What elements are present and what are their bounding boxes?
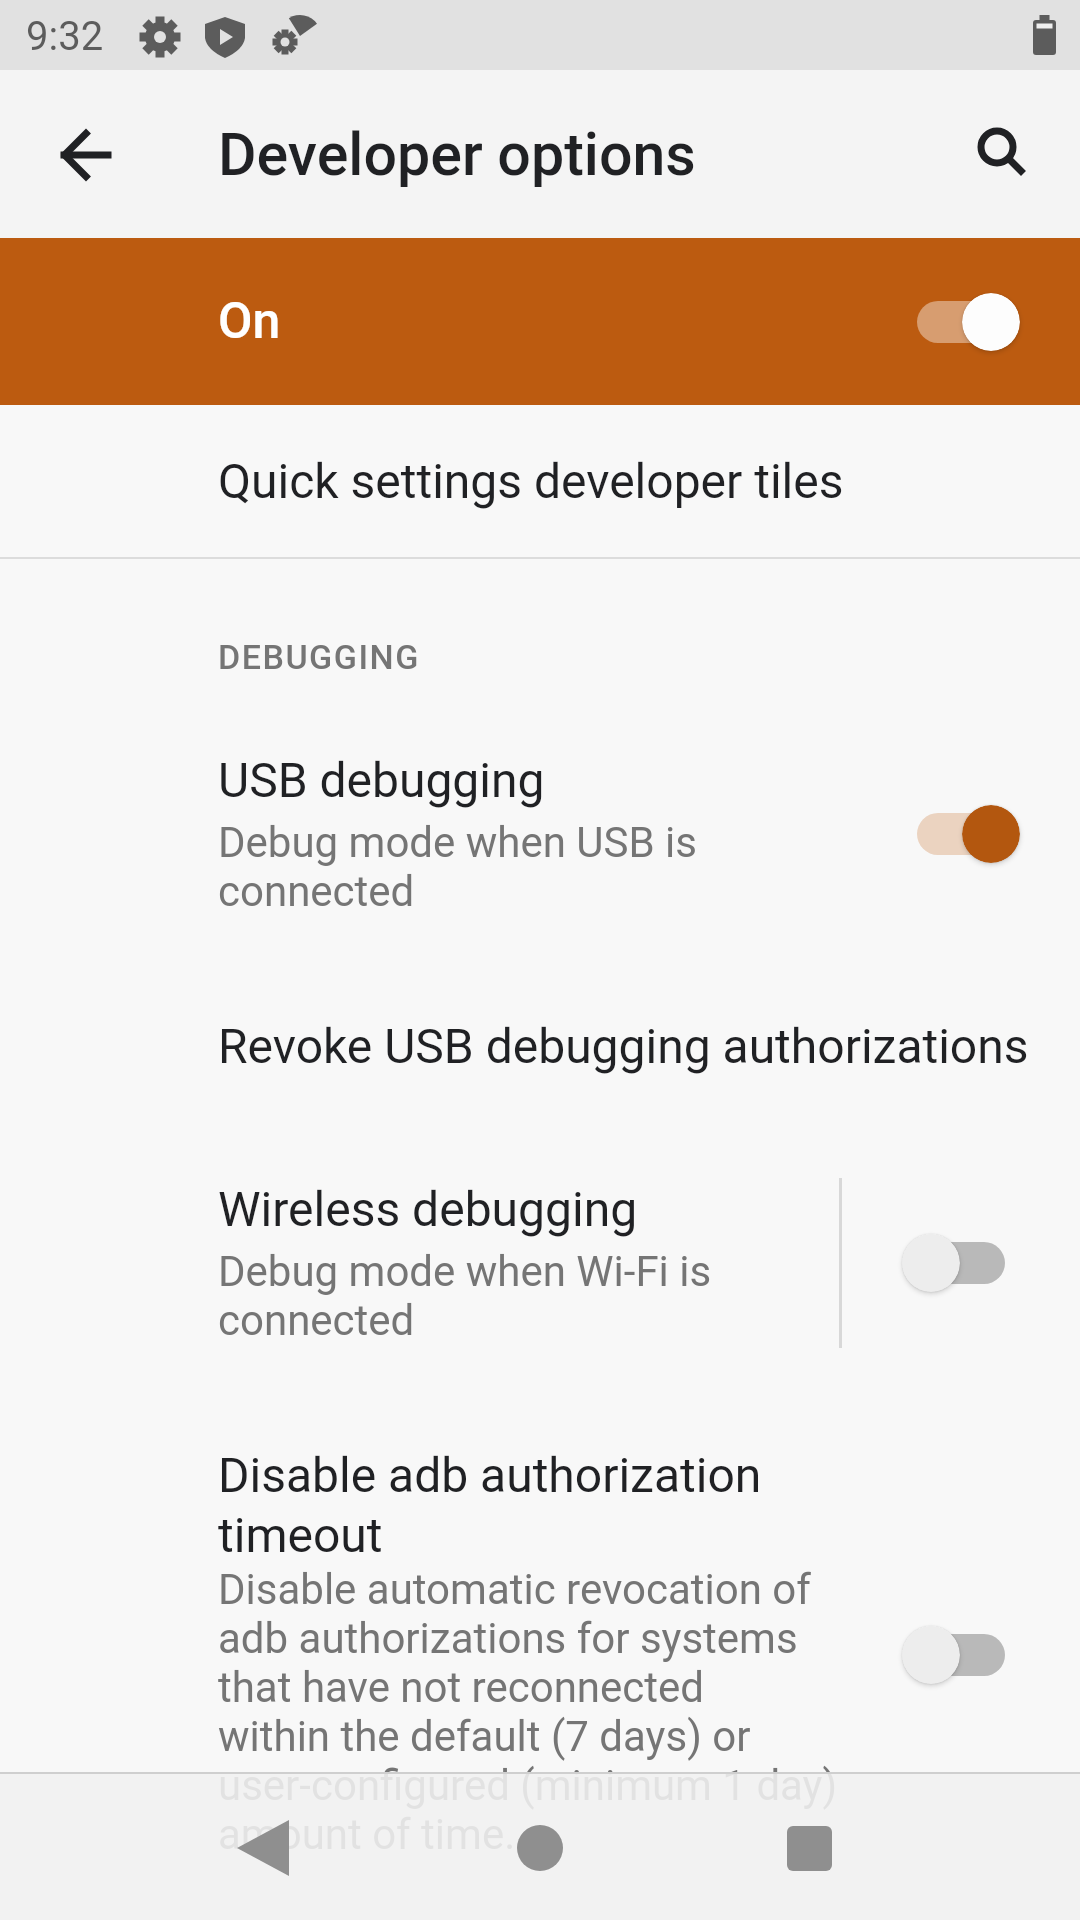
button[interactable]: [38, 108, 134, 204]
button[interactable]: USB debugging: [0, 705, 1080, 962]
button[interactable]: Disable adb authorization timeout: [0, 1395, 1080, 1920]
button[interactable]: [952, 104, 1048, 200]
staticText: Debug mode when USB is connected: [218, 818, 697, 916]
button[interactable]: [902, 1231, 1020, 1295]
button[interactable]: [215, 1800, 311, 1896]
staticText: On: [218, 292, 902, 351]
staticText: Developer options: [218, 120, 696, 189]
staticText: Revoke USB debugging authorizations: [218, 1018, 1029, 1074]
staticText: USB debugging: [218, 752, 545, 808]
button[interactable]: On: [0, 238, 1080, 405]
button[interactable]: [762, 1800, 858, 1896]
button[interactable]: [902, 1623, 1020, 1687]
staticText: Disable automatic revocation of adb auth…: [218, 1565, 838, 1859]
staticText: 9:32: [26, 13, 104, 60]
button[interactable]: Revoke USB debugging authorizations: [0, 962, 1080, 1130]
button[interactable]: [902, 802, 1020, 866]
button[interactable]: [492, 1800, 588, 1896]
staticText: Debug mode when Wi-Fi is connected: [218, 1247, 712, 1345]
button[interactable]: Quick settings developer tiles: [0, 405, 1080, 557]
button[interactable]: Wireless debugging: [0, 1130, 1080, 1395]
staticText: Quick settings developer tiles: [218, 453, 844, 509]
button[interactable]: [902, 290, 1020, 354]
staticText: Wireless debugging: [218, 1181, 638, 1237]
staticText: DEBUGGING: [218, 637, 420, 677]
staticText: Disable adb authorization timeout: [218, 1447, 762, 1563]
